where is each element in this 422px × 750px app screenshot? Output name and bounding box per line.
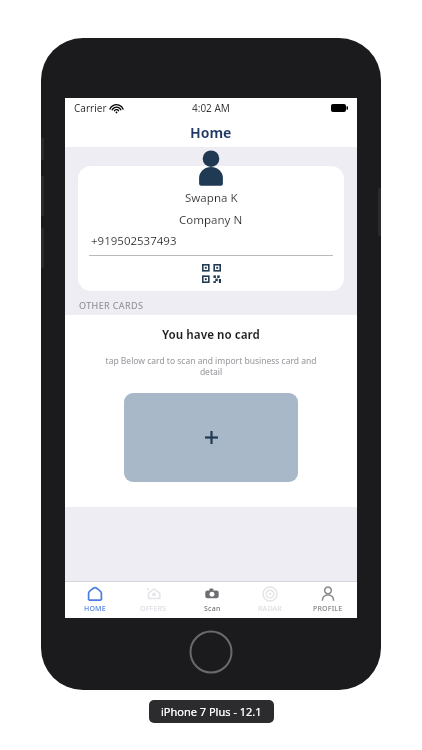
staticText: OFFERS [140, 604, 167, 614]
staticText: OTHER CARDS [79, 299, 144, 311]
staticText: +919502537493 [91, 233, 344, 249]
staticText: 4:02 AM [192, 101, 230, 115]
staticText: PROFILE [313, 604, 343, 614]
button[interactable]: Show QR code [202, 264, 221, 283]
button[interactable]: Scan [183, 582, 241, 618]
staticText: You have no card [162, 327, 260, 343]
button[interactable]: OFFERS [124, 582, 183, 618]
button[interactable]: HOME [65, 582, 124, 618]
staticText: Company N [179, 212, 243, 228]
button[interactable]: PROFILE [299, 582, 357, 618]
staticText: Scan [204, 604, 221, 614]
button[interactable]: RADAR [241, 582, 299, 618]
staticText: RADAR [258, 604, 282, 614]
staticText: Carrier [74, 101, 107, 115]
button[interactable]: Swapna K [78, 166, 344, 291]
button[interactable]: Add card [124, 393, 298, 482]
staticText: tap Below card to scan and import busine… [99, 355, 323, 377]
staticText: HOME [84, 604, 106, 614]
staticText: Home [190, 123, 232, 142]
other: Profile photo [194, 149, 228, 185]
staticText: iPhone 7 Plus - 12.1 [161, 704, 262, 719]
staticText: Swapna K [185, 190, 238, 206]
